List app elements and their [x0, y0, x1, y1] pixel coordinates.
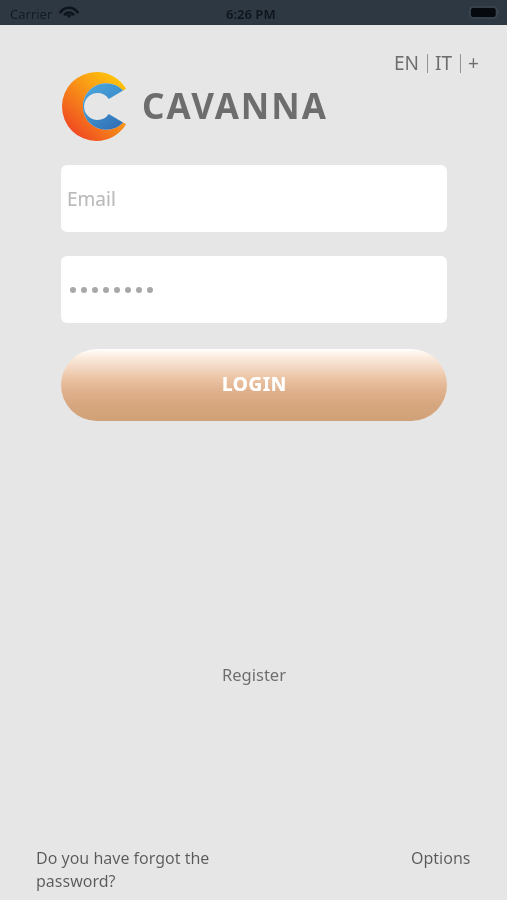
- button[interactable]: EN: [392, 47, 422, 79]
- staticText: Register: [222, 663, 286, 685]
- staticText: Email: [67, 186, 116, 212]
- button[interactable]: Register: [212, 659, 296, 689]
- staticText: LOGIN: [222, 371, 287, 397]
- staticText: Carrier: [10, 5, 53, 23]
- staticText: CAVANNA: [142, 82, 328, 130]
- staticText: IT: [435, 50, 453, 76]
- staticText: Options: [411, 847, 471, 869]
- staticText: +: [468, 50, 479, 76]
- staticText: EN: [394, 50, 420, 76]
- button[interactable]: IT: [433, 47, 455, 79]
- button[interactable]: Options: [411, 847, 471, 869]
- button[interactable]: Do you have forgot the password?: [36, 847, 256, 892]
- button[interactable]: Email: [61, 165, 447, 232]
- other: Wi-Fi signal: [61, 6, 77, 18]
- button[interactable]: [61, 256, 447, 323]
- other: Battery full: [471, 8, 499, 17]
- other: Cavanna logo: [62, 72, 131, 141]
- button[interactable]: +: [466, 47, 481, 79]
- staticText: 6:26 PM: [226, 5, 276, 23]
- staticText: Do you have forgot the password?: [36, 847, 256, 892]
- button[interactable]: LOGIN: [61, 349, 447, 421]
